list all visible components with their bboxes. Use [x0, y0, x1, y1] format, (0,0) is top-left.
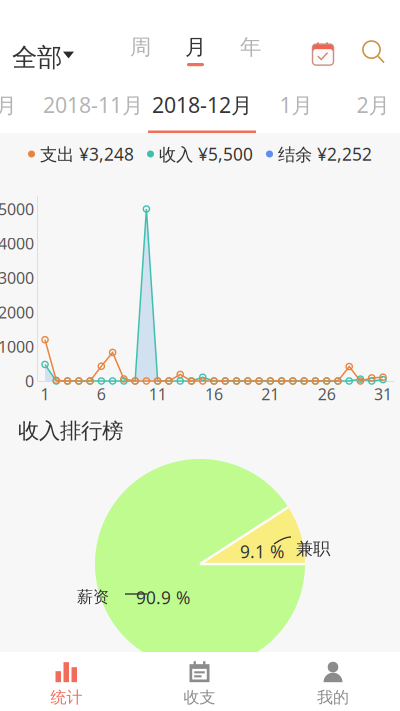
staticText: 支出 ¥3,248: [35, 142, 134, 165]
button[interactable]: 2018-11月: [38, 84, 148, 133]
button[interactable]: 2018-12月: [148, 84, 256, 133]
staticText: 2000: [0, 302, 34, 323]
staticText: 31: [374, 383, 392, 405]
staticText: 4000: [0, 233, 34, 254]
staticText: 90.9 %: [136, 586, 190, 609]
staticText: 1: [40, 383, 49, 405]
staticText: 1月: [279, 91, 312, 119]
staticText: 3000: [0, 267, 34, 288]
staticText: 统计: [50, 688, 82, 707]
button[interactable]: 我的: [266, 652, 400, 711]
button[interactable]: 年: [223, 21, 278, 73]
button[interactable]: 月: [168, 21, 223, 73]
staticText: 0: [25, 370, 34, 392]
staticText: 9.1 %: [240, 540, 284, 563]
button[interactable]: 1月: [266, 84, 326, 133]
staticText: 月: [0, 93, 16, 119]
staticText: 2月: [356, 91, 389, 119]
staticText: 结余 ¥2,252: [273, 142, 372, 165]
staticText: 周: [130, 34, 151, 60]
staticText: 收入 ¥5,500: [154, 142, 253, 165]
staticText: 全部: [12, 42, 62, 73]
staticText: 收入排行榜: [18, 418, 123, 444]
button[interactable]: 全部: [0, 24, 110, 76]
staticText: 收支: [183, 688, 215, 707]
button[interactable]: 周: [113, 21, 168, 73]
button[interactable]: 收支: [133, 652, 266, 711]
button[interactable]: 月: [0, 84, 18, 133]
staticText: 年: [240, 34, 261, 60]
staticText: 11: [149, 383, 167, 405]
staticText: 兼职: [296, 538, 330, 559]
staticText: 26: [318, 383, 336, 405]
staticText: 6: [97, 383, 106, 405]
staticText: 薪资: [77, 587, 109, 607]
staticText: 月: [185, 34, 206, 60]
staticText: 1000: [0, 336, 34, 357]
button[interactable]: Calendar: [301, 31, 345, 75]
staticText: 16: [205, 383, 223, 405]
staticText: 21: [261, 383, 279, 405]
staticText: 5000: [0, 198, 34, 220]
staticText: 2018-11月: [43, 91, 143, 119]
button[interactable]: Search: [352, 31, 396, 75]
button[interactable]: 2月: [343, 84, 400, 133]
staticText: 我的: [317, 688, 349, 707]
staticText: 2018-12月: [152, 91, 252, 119]
button[interactable]: 统计: [0, 652, 133, 711]
